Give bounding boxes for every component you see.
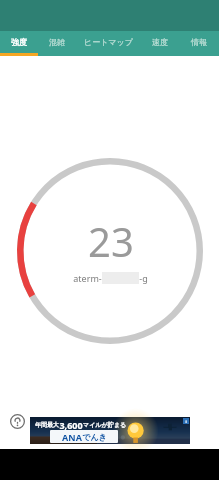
- button[interactable]: 速度: [141, 31, 178, 56]
- staticText: ヒートマップ: [84, 37, 133, 47]
- button[interactable]: 強度: [0, 31, 38, 56]
- staticText: 23: [88, 214, 134, 268]
- staticText: 混雑: [49, 37, 65, 47]
- staticText: 強度: [11, 37, 27, 47]
- staticText: でんき: [82, 432, 107, 442]
- staticText: ANA: [62, 431, 82, 443]
- staticText: -g: [139, 272, 148, 284]
- staticText: i: [185, 419, 187, 424]
- button[interactable]: 混雑: [38, 31, 75, 56]
- staticText: マイルが貯まる: [83, 421, 126, 429]
- staticText: aterm-: [73, 272, 102, 284]
- button[interactable]: 情報: [178, 31, 219, 56]
- staticText: 情報: [191, 37, 207, 47]
- button[interactable]: Help: [5, 409, 29, 433]
- staticText: 3,600: [59, 419, 83, 431]
- staticText: 速度: [152, 37, 168, 47]
- staticText: 年間最大: [35, 421, 59, 429]
- button[interactable]: ヒートマップ: [75, 31, 141, 56]
- button[interactable]: Advertisement: [30, 417, 190, 444]
